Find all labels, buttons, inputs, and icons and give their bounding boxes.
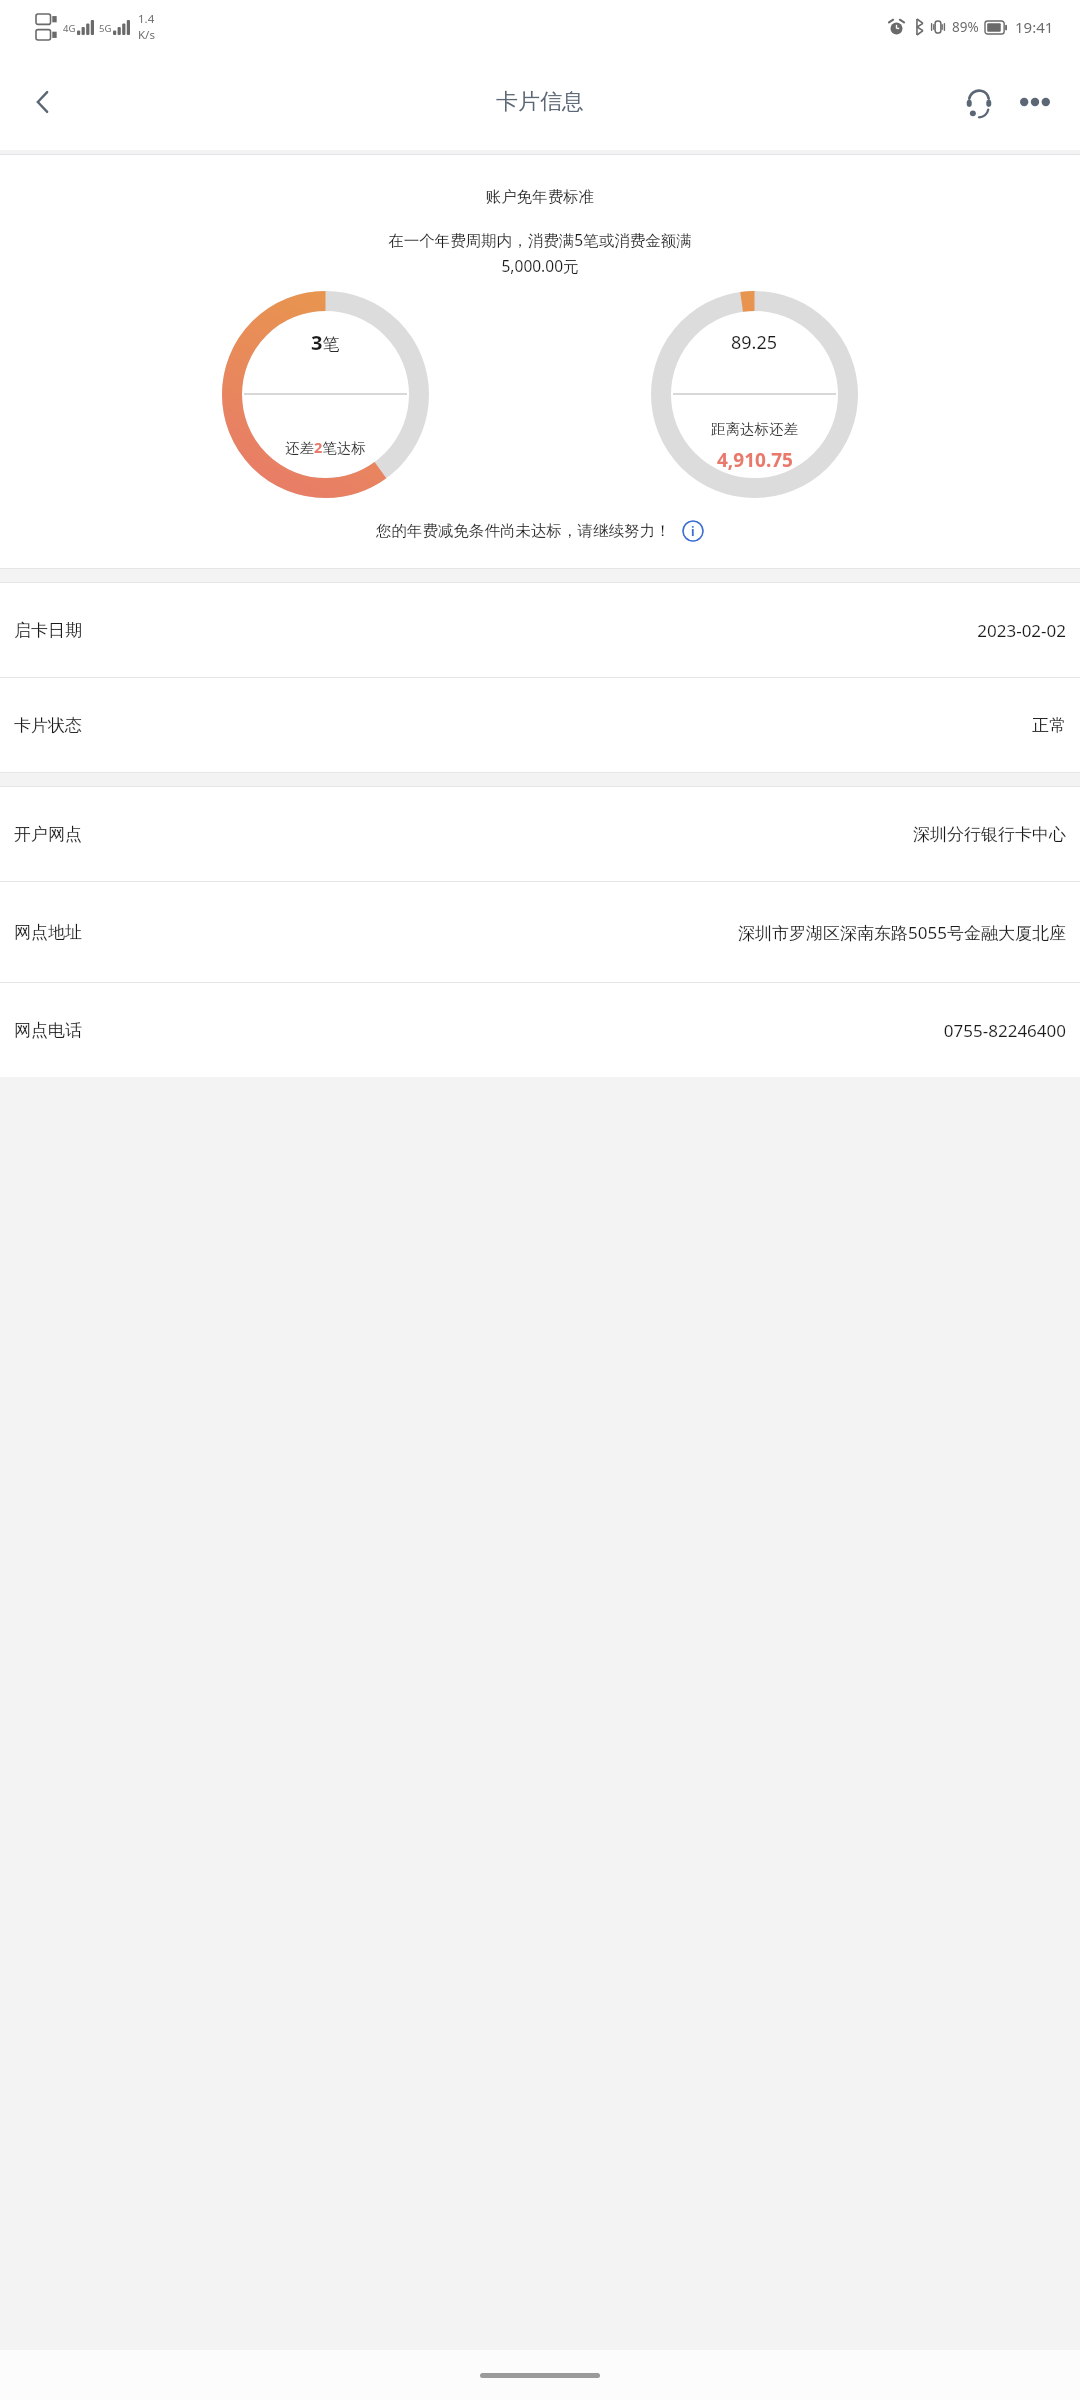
button[interactable]: 卡片状态: [0, 678, 1080, 772]
button[interactable]: 网点地址: [0, 882, 1080, 982]
staticText: 在一个年费周期内，消费满5笔或消费金额满 5,000.00元: [14, 229, 1066, 277]
staticText: 启卡日期: [14, 620, 82, 641]
staticText: 19:41: [1015, 17, 1054, 37]
staticText: 1.4: [138, 11, 155, 27]
staticText: 深圳分行银行卡中心: [96, 824, 1066, 845]
button[interactable]: 启卡日期: [0, 583, 1080, 677]
staticText: 卡片状态: [14, 715, 82, 736]
staticText: 正常: [96, 715, 1066, 736]
staticText: 还差2笔达标: [285, 437, 366, 457]
staticText: 卡片信息: [496, 88, 584, 116]
staticText: 3笔: [311, 329, 340, 356]
staticText: i: [691, 523, 695, 539]
staticText: 网点地址: [14, 922, 82, 943]
staticText: 89%: [952, 18, 979, 36]
button[interactable]: 说明: [682, 520, 704, 542]
staticText: 账户免年费标准: [0, 187, 1080, 207]
button[interactable]: 返回: [14, 73, 72, 131]
staticText: 您的年费减免条件尚未达标，请继续努力！: [376, 521, 671, 541]
staticText: 0755-82246400: [96, 1019, 1066, 1042]
button[interactable]: 更多: [1008, 75, 1062, 129]
staticText: 网点电话: [14, 1020, 82, 1041]
button[interactable]: 开户网点: [0, 787, 1080, 881]
staticText: 4G: [63, 22, 76, 35]
staticText: 4,910.75: [717, 447, 793, 473]
staticText: 距离达标还差: [711, 420, 798, 438]
button[interactable]: 客服: [952, 75, 1006, 129]
button[interactable]: 网点电话: [0, 983, 1080, 1077]
staticText: 2023-02-02: [96, 619, 1066, 642]
staticText: 深圳市罗湖区深南东路5055号金融大厦北座: [96, 921, 1066, 944]
staticText: K/s: [138, 27, 155, 43]
staticText: 89.25: [731, 330, 778, 355]
staticText: 开户网点: [14, 824, 82, 845]
staticText: 5G: [99, 22, 112, 35]
